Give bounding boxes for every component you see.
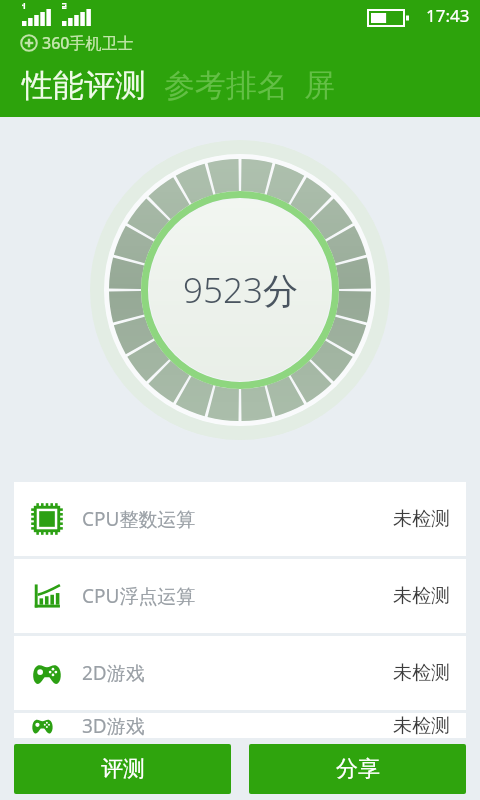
button[interactable]: 3D游戏 xyxy=(14,713,466,738)
staticText: 分享 xyxy=(336,755,380,783)
staticText: 9523分 xyxy=(183,266,298,314)
staticText: CPU浮点运算 xyxy=(82,583,196,609)
staticText: 评测 xyxy=(101,755,145,783)
button[interactable]: 屏 xyxy=(304,66,335,105)
button[interactable]: 评测 xyxy=(14,744,231,794)
staticText: 未检测 xyxy=(393,584,450,608)
button[interactable]: CPU整数运算 xyxy=(14,482,466,556)
staticText: 未检测 xyxy=(393,714,450,738)
staticText: 屏 xyxy=(304,66,335,105)
other: 2D游戏 xyxy=(30,656,64,690)
staticText: 未检测 xyxy=(393,507,450,531)
staticText: 3D游戏 xyxy=(82,713,145,738)
button[interactable]: 2D游戏 xyxy=(14,636,466,710)
staticText: CPU整数运算 xyxy=(82,506,196,532)
staticText: 17:43 xyxy=(426,4,470,27)
button[interactable]: 参考排名 xyxy=(164,66,288,105)
other: 3D游戏 xyxy=(30,713,64,738)
button[interactable]: 性能评测 xyxy=(22,66,146,105)
other: CPU浮点运算 xyxy=(30,579,64,613)
staticText: 未检测 xyxy=(393,661,450,685)
other: CPU整数运算 xyxy=(30,502,64,536)
staticText: 2D游戏 xyxy=(82,660,145,686)
staticText: 性能评测 xyxy=(22,66,146,105)
button[interactable]: CPU浮点运算 xyxy=(14,559,466,633)
button[interactable]: 分享 xyxy=(249,744,466,794)
staticText: 参考排名 xyxy=(164,66,288,105)
staticText: 360手机卫士 xyxy=(42,32,134,54)
